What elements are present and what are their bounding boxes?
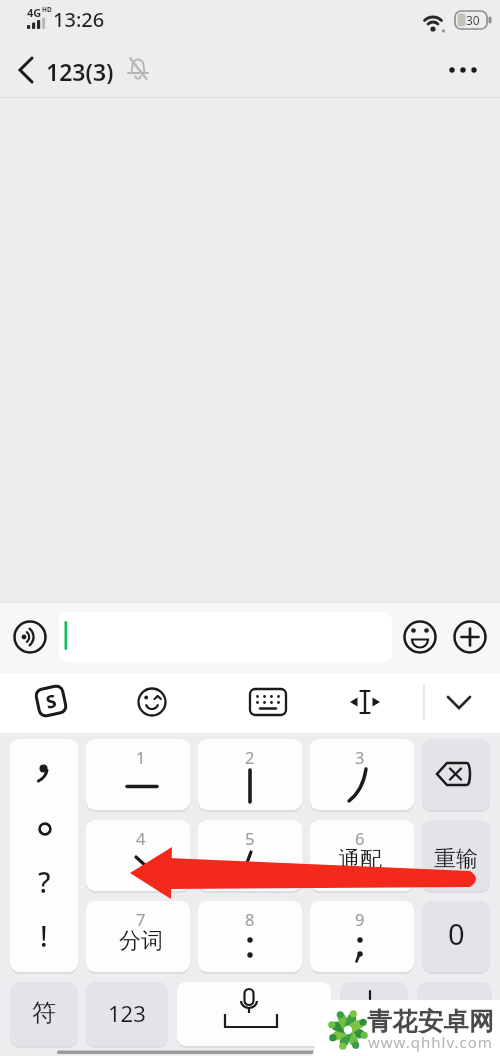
button[interactable] <box>347 684 383 720</box>
staticText: 分词 <box>119 927 163 955</box>
staticText: HD <box>42 5 52 14</box>
staticText: 1 <box>136 746 146 768</box>
button[interactable] <box>198 901 302 972</box>
button[interactable] <box>310 739 414 810</box>
button[interactable] <box>250 684 286 720</box>
button[interactable] <box>417 982 492 1046</box>
button[interactable] <box>310 901 414 972</box>
button[interactable] <box>86 820 190 891</box>
button[interactable] <box>10 739 78 972</box>
button[interactable] <box>310 820 414 891</box>
button[interactable] <box>134 684 170 720</box>
staticText: ! <box>40 917 48 955</box>
staticText: 符 <box>32 998 56 1028</box>
staticText: 4 <box>136 827 146 849</box>
button[interactable]: 123(3) <box>46 56 122 84</box>
staticText: 8 <box>245 908 255 930</box>
button[interactable]: S <box>33 683 69 719</box>
staticText: ? <box>38 863 51 901</box>
staticText: 4G <box>27 5 42 20</box>
staticText: 9 <box>355 908 365 930</box>
button[interactable] <box>198 739 302 810</box>
button[interactable] <box>86 901 190 972</box>
button[interactable] <box>12 619 48 655</box>
staticText: 13:26 <box>53 6 105 33</box>
button[interactable] <box>441 684 477 720</box>
staticText: www.qhhlv.com <box>368 1032 493 1052</box>
staticText: 青花安卓网 <box>367 1006 495 1037</box>
button[interactable] <box>440 56 486 84</box>
button[interactable] <box>422 901 490 972</box>
staticText: 7 <box>136 908 146 930</box>
button[interactable] <box>422 820 490 891</box>
button[interactable] <box>10 982 78 1046</box>
button[interactable] <box>402 619 438 655</box>
button[interactable] <box>198 820 302 891</box>
button[interactable] <box>452 619 488 655</box>
staticText: S <box>44 688 60 715</box>
staticText: 重输 <box>434 845 478 873</box>
staticText: 0 <box>448 914 465 953</box>
button[interactable] <box>340 982 408 1046</box>
staticText: 5 <box>245 827 255 849</box>
staticText: 123 <box>108 998 146 1028</box>
button[interactable] <box>422 739 490 810</box>
button[interactable] <box>86 739 190 810</box>
button[interactable] <box>177 982 331 1046</box>
staticText: 3 <box>355 746 365 768</box>
button[interactable] <box>59 612 392 662</box>
button[interactable] <box>86 982 168 1046</box>
staticText: 6 <box>355 827 365 849</box>
staticText: 2 <box>245 746 255 768</box>
staticText: 30 <box>466 12 480 28</box>
button[interactable] <box>8 54 42 86</box>
staticText: 通配 <box>338 846 382 874</box>
staticText: 123(3) <box>46 56 114 84</box>
